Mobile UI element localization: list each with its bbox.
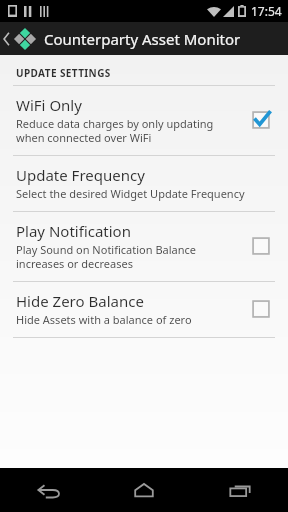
- button[interactable]: Navigate up: [0, 22, 39, 55]
- button[interactable]: Unchecked: [246, 294, 276, 324]
- staticText: Update Frequency: [16, 165, 145, 185]
- staticText: UPDATE SETTINGS: [16, 66, 111, 80]
- button[interactable]: Checked: [246, 105, 276, 135]
- button[interactable]: Back: [0, 468, 96, 512]
- staticText: Play Notification: [16, 221, 131, 241]
- button[interactable]: Play Notification: [0, 212, 288, 281]
- staticText: Select the desired Widget Update Frequen…: [16, 186, 245, 201]
- staticText: Counterparty Asset Monitor: [44, 29, 241, 49]
- button[interactable]: Recent apps: [192, 468, 288, 512]
- staticText: Reduce data charges by only updating whe…: [16, 116, 214, 145]
- button[interactable]: WiFi Only: [0, 86, 288, 155]
- button[interactable]: Hide Zero Balance: [0, 282, 288, 337]
- staticText: Play Sound on Notification Balance incre…: [16, 242, 196, 271]
- button[interactable]: Home: [96, 468, 192, 512]
- button[interactable]: Update Frequency: [0, 156, 288, 211]
- staticText: 17:54: [251, 3, 282, 19]
- staticText: Hide Zero Balance: [16, 291, 144, 311]
- staticText: Hide Assets with a balance of zero: [16, 312, 192, 327]
- button[interactable]: Unchecked: [246, 231, 276, 261]
- staticText: WiFi Only: [16, 95, 82, 115]
